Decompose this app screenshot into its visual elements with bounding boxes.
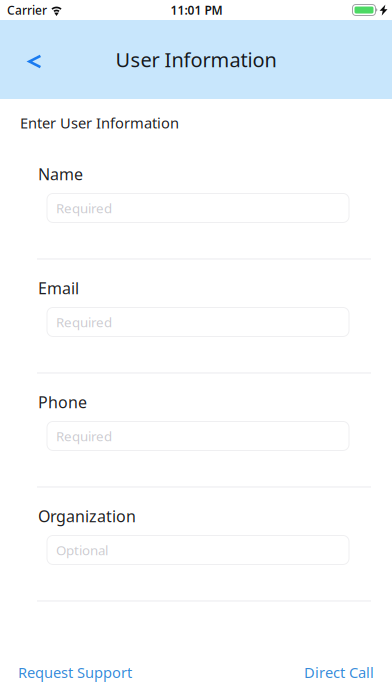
- button[interactable]: Phone: [0, 421, 392, 450]
- staticText: Phone: [38, 391, 87, 413]
- button[interactable]: Name: [0, 193, 392, 222]
- staticText: Required: [56, 313, 112, 331]
- button[interactable]: Organization: [0, 535, 392, 564]
- staticText: User Information: [115, 46, 276, 73]
- staticText: Required: [56, 199, 112, 217]
- button[interactable]: Email: [0, 307, 392, 336]
- staticText: 11:01 PM: [170, 2, 222, 18]
- staticText: Name: [38, 163, 83, 185]
- staticText: Direct Call: [304, 662, 374, 682]
- staticText: Required: [56, 427, 112, 445]
- staticText: Enter User Information: [20, 113, 179, 132]
- button[interactable]: Back: [13, 39, 57, 83]
- button[interactable]: Request Support: [18, 662, 132, 682]
- staticText: Optional: [56, 541, 108, 559]
- staticText: Request Support: [18, 662, 132, 682]
- staticText: Organization: [38, 505, 136, 527]
- staticText: Email: [38, 277, 79, 299]
- staticText: Carrier: [7, 2, 47, 18]
- button[interactable]: Direct Call: [304, 662, 374, 682]
